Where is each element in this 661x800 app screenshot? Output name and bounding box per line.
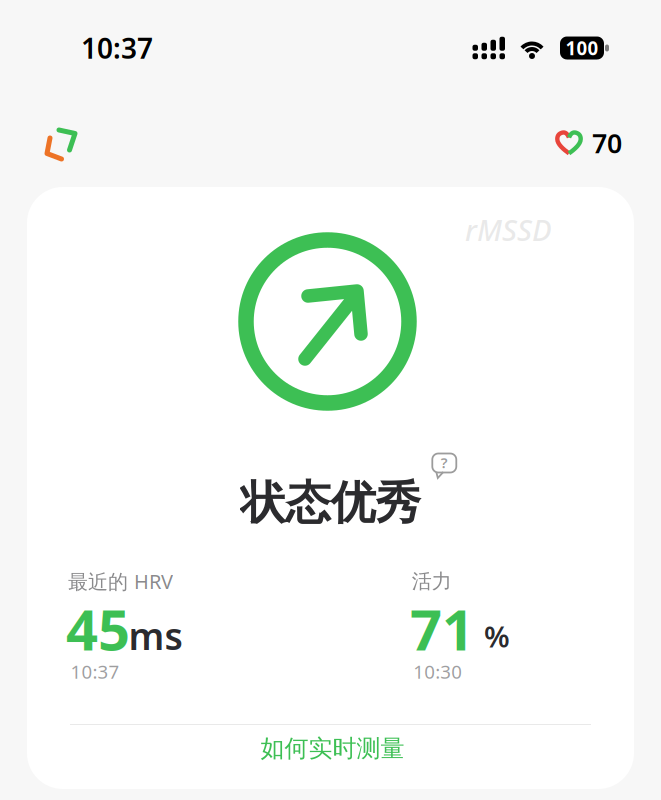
button[interactable]: App logo xyxy=(42,123,82,163)
button[interactable]: What does this mean xyxy=(431,450,457,476)
staticText: ms xyxy=(128,611,182,660)
staticText: 10:37 xyxy=(70,659,119,684)
staticText: 状态优秀 xyxy=(240,475,420,531)
staticText: 活力 xyxy=(412,569,452,594)
staticText: 如何实时测量 xyxy=(260,734,404,763)
staticText: 10:37 xyxy=(81,29,153,67)
staticText: 10:30 xyxy=(413,659,462,684)
staticText: 100 xyxy=(565,36,598,60)
staticText: rMSSD xyxy=(465,210,552,249)
staticText: 71 xyxy=(410,592,474,666)
staticText: 70 xyxy=(592,125,622,161)
staticText: ? xyxy=(441,453,448,472)
button[interactable]: Heart rate 70 xyxy=(556,125,622,161)
staticText: 最近的 HRV xyxy=(68,568,173,595)
staticText: 45 xyxy=(66,592,130,666)
button[interactable]: 如何实时测量 xyxy=(27,725,634,789)
staticText: % xyxy=(484,616,510,655)
